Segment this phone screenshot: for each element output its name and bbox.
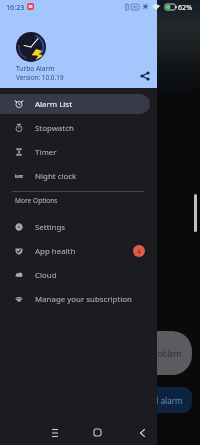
button[interactable]: Settings: [0, 217, 150, 237]
button[interactable]: Report a problem: [105, 331, 192, 375]
staticText: Turbo Alarm: [16, 64, 55, 73]
button[interactable]: Stopwatch: [0, 118, 150, 138]
staticText: App health: [35, 246, 76, 257]
button[interactable]: Recent apps: [44, 422, 65, 443]
staticText: Alarm List: [35, 99, 72, 110]
button[interactable]: Share: [136, 67, 154, 85]
button[interactable]: Night clock: [0, 166, 150, 186]
staticText: Add alarm: [143, 395, 183, 406]
button[interactable]: Cloud: [0, 265, 150, 285]
button[interactable]: Timer: [0, 142, 150, 162]
staticText: 4: [137, 247, 141, 256]
staticText: Report a problem: [114, 348, 182, 359]
staticText: More Options: [15, 196, 58, 205]
staticText: Cloud: [35, 270, 57, 281]
button[interactable]: Home: [87, 422, 108, 443]
staticText: Stopwatch: [35, 123, 74, 134]
staticText: Night clock: [35, 171, 77, 182]
button[interactable]: Back: [132, 422, 153, 443]
staticText: Timer: [35, 147, 57, 158]
button[interactable]: Alarm List: [0, 94, 150, 114]
staticText: Version: 10.0.19: [16, 73, 64, 82]
button[interactable]: Add alarm: [113, 387, 192, 413]
button[interactable]: App health: [0, 241, 150, 261]
staticText: 16:23: [6, 2, 25, 12]
button[interactable]: Manage your subscription: [0, 289, 150, 309]
staticText: Manage your subscription: [35, 294, 132, 305]
staticText: 62%: [178, 2, 193, 12]
staticText: Settings: [35, 222, 66, 233]
